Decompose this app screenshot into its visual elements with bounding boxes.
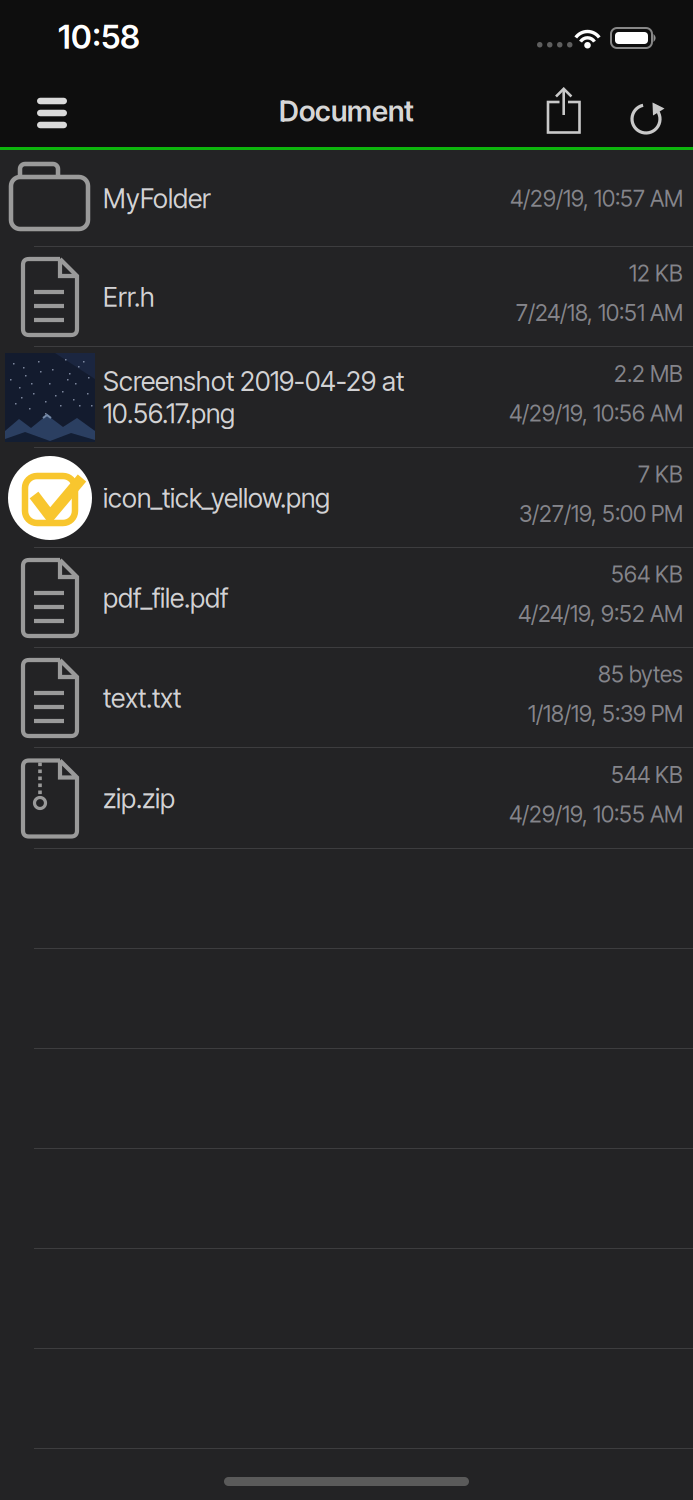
button[interactable]: MyFolder xyxy=(0,150,693,247)
staticText: 2.2 MB xyxy=(614,360,683,387)
staticText: 7 KB xyxy=(638,461,683,488)
staticText: 4/29/19, 10:57 AM xyxy=(510,185,683,212)
button[interactable]: Screenshot 2019-04-29 at xyxy=(0,347,693,448)
staticText: MyFolder xyxy=(103,182,211,215)
button[interactable]: icon_tick_yellow.png xyxy=(0,448,693,548)
staticText: pdf_file.pdf xyxy=(103,582,228,614)
staticText: 85 bytes xyxy=(598,661,683,688)
staticText: zip.zip xyxy=(103,782,175,815)
button[interactable]: Err.h xyxy=(0,247,693,347)
staticText: 12 KB xyxy=(629,260,683,287)
button[interactable]: Menu xyxy=(22,88,82,138)
staticText: 4/29/19, 10:56 AM xyxy=(509,399,683,427)
staticText: icon_tick_yellow.png xyxy=(103,482,330,514)
staticText: 7/24/18, 10:51 AM xyxy=(516,299,683,326)
staticText: Screenshot 2019-04-29 at xyxy=(103,365,404,397)
button[interactable]: zip.zip xyxy=(0,748,693,849)
staticText: 564 KB xyxy=(611,561,683,588)
button[interactable]: Share xyxy=(539,83,589,139)
staticText: 10:58 xyxy=(58,17,140,56)
staticText: 10.56.17.png xyxy=(103,397,235,430)
staticText: 544 KB xyxy=(611,761,683,788)
staticText: Document xyxy=(279,94,414,128)
staticText: text.txt xyxy=(103,682,181,714)
staticText: 4/29/19, 10:55 AM xyxy=(509,800,683,828)
button[interactable]: text.txt xyxy=(0,648,693,748)
staticText: Err.h xyxy=(103,281,155,313)
button[interactable]: Refresh xyxy=(623,96,673,140)
staticText: 3/27/19, 5:00 PM xyxy=(519,500,683,527)
button[interactable]: pdf_file.pdf xyxy=(0,548,693,648)
staticText: 1/18/19, 5:39 PM xyxy=(528,700,683,727)
staticText: 4/24/19, 9:52 AM xyxy=(518,600,683,627)
